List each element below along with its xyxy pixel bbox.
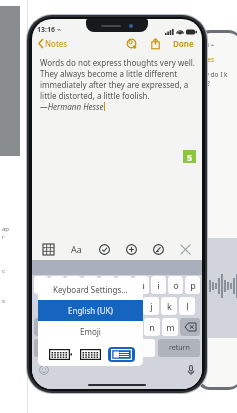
staticText: d	[78, 300, 84, 312]
button[interactable]: e	[66, 276, 81, 294]
button[interactable]: Checklist	[96, 241, 113, 258]
staticText: o	[173, 279, 179, 291]
staticText: m	[166, 321, 175, 333]
staticText: Words do not express thoughts very well.	[40, 57, 195, 68]
staticText: e	[71, 279, 77, 291]
button[interactable]: Done	[171, 36, 196, 51]
staticText: Aa	[71, 243, 82, 255]
staticText: English (UK)	[68, 305, 113, 316]
staticText: t	[106, 279, 110, 291]
button[interactable]: r	[83, 276, 98, 294]
button[interactable]: w	[50, 276, 64, 294]
staticText: —Hermann Hesse	[40, 101, 104, 112]
button[interactable]: Keyboard Settings...	[38, 278, 143, 300]
button[interactable]: f	[90, 297, 105, 315]
button[interactable]: Markup	[150, 241, 167, 258]
staticText: ap	[2, 225, 10, 233]
staticText: l	[186, 300, 189, 312]
staticText: ay?	[200, 79, 210, 88]
button[interactable]: x	[74, 318, 89, 336]
staticText: c	[96, 321, 101, 333]
button[interactable]: Emoji	[38, 321, 143, 342]
button[interactable]: Keyboard layout 3	[108, 347, 135, 362]
staticText: return	[169, 343, 190, 353]
button[interactable]: English (UK)	[38, 300, 143, 321]
staticText: c	[2, 267, 5, 275]
button[interactable]: l	[179, 297, 195, 315]
staticText: They always become a little different	[40, 68, 178, 79]
staticText: k	[167, 300, 172, 312]
staticText: Notes	[45, 38, 68, 49]
button[interactable]: Space	[59, 339, 155, 357]
staticText: r	[2, 233, 5, 241]
staticText: w	[53, 279, 61, 291]
button[interactable]: o	[168, 276, 183, 294]
staticText: j	[150, 300, 153, 312]
staticText: p	[190, 279, 196, 291]
button[interactable]: t	[100, 276, 115, 294]
button[interactable]: c	[91, 318, 106, 336]
button[interactable]: d	[73, 297, 88, 315]
button[interactable]: Share	[149, 36, 162, 51]
button[interactable]: b	[126, 318, 142, 336]
staticText: Emoji	[80, 326, 101, 337]
button[interactable]: k	[161, 297, 177, 315]
button[interactable]: v	[108, 318, 124, 336]
staticText: Keyboard Settings...	[53, 284, 128, 295]
staticText: otes	[201, 55, 215, 64]
button[interactable]: j	[143, 297, 159, 315]
button[interactable]: Keyboard layout 2	[77, 347, 104, 362]
staticText: 13:16 ⌁	[37, 25, 62, 35]
staticText: f	[96, 300, 100, 312]
button[interactable]: g	[107, 297, 123, 315]
button[interactable]: Aa	[68, 240, 85, 258]
staticText: i	[157, 279, 160, 291]
staticText: immediately after they are expressed, a	[40, 79, 189, 90]
button[interactable]: Numbers	[34, 339, 56, 357]
button[interactable]: s	[56, 297, 71, 315]
staticText: n	[149, 321, 155, 333]
button[interactable]: Add attachment	[123, 241, 140, 258]
button[interactable]: a	[39, 297, 54, 315]
staticText: Done	[173, 38, 194, 49]
button[interactable]: h	[125, 297, 141, 315]
staticText: 5	[187, 151, 193, 163]
button[interactable]: Shift	[34, 318, 54, 336]
button[interactable]: p	[185, 276, 200, 294]
staticText: u	[139, 279, 145, 291]
button[interactable]: z	[57, 318, 72, 336]
staticText: x	[79, 321, 84, 333]
staticText: s	[2, 297, 5, 305]
staticText: little distorted, a little foolish.	[40, 90, 150, 101]
button[interactable]: Backspace	[180, 318, 200, 336]
button[interactable]: Table	[40, 241, 57, 258]
button[interactable]: Notes	[36, 36, 70, 51]
button[interactable]: u	[134, 276, 149, 294]
button[interactable]: Keyboard layout 1	[46, 347, 73, 362]
button[interactable]: return	[158, 339, 200, 357]
button[interactable]: y	[117, 276, 132, 294]
button[interactable]: Emoji	[39, 365, 49, 375]
button[interactable]: Dictate	[187, 365, 195, 376]
staticText: 18 ⌁	[202, 41, 215, 49]
button[interactable]: i	[151, 276, 166, 294]
button[interactable]: Collaborate	[124, 36, 139, 51]
staticText: r	[89, 279, 93, 291]
button[interactable]: m	[162, 318, 178, 336]
button[interactable]: q	[34, 276, 48, 294]
button[interactable]: Close	[177, 241, 194, 258]
staticText: g	[112, 300, 118, 312]
staticText: ow do I k	[200, 70, 228, 79]
button[interactable]: n	[144, 318, 160, 336]
